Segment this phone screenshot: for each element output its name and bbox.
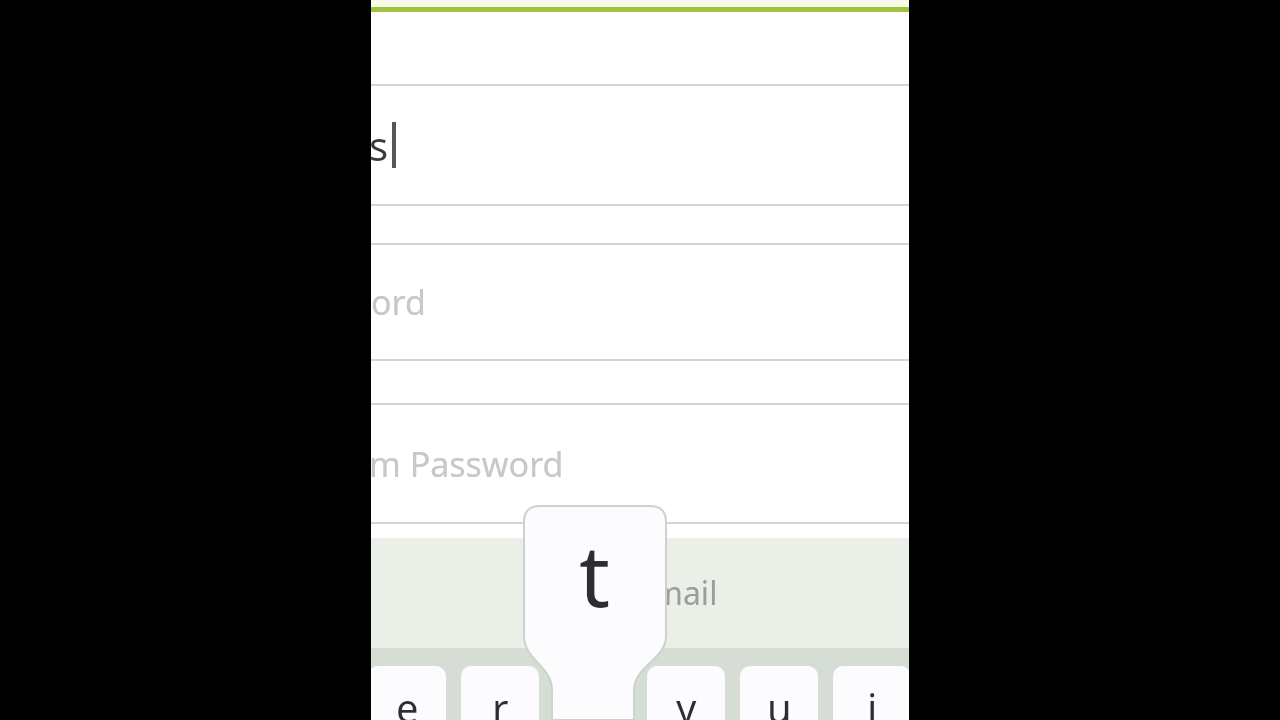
button[interactable]: s <box>371 86 909 204</box>
button[interactable]: y <box>647 666 725 720</box>
staticText: e <box>396 680 419 720</box>
staticText: y <box>676 680 697 720</box>
button[interactable]: r <box>461 666 539 720</box>
button[interactable]: e <box>371 666 446 720</box>
staticText: ord <box>371 279 426 325</box>
button[interactable]: i <box>833 666 909 720</box>
staticText: t <box>579 515 611 632</box>
button[interactable]: t <box>524 506 666 640</box>
staticText: r <box>492 680 509 720</box>
button[interactable]: mail <box>371 538 909 648</box>
staticText: mail <box>653 571 718 615</box>
staticText: i <box>867 680 878 720</box>
button[interactable]: u <box>740 666 818 720</box>
staticText: s <box>371 118 389 172</box>
button[interactable]: m Password <box>371 405 909 522</box>
button[interactable]: ord <box>371 245 909 359</box>
staticText: u <box>767 680 792 720</box>
staticText: m Password <box>371 441 564 487</box>
